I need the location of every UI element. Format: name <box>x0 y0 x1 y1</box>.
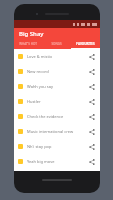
staticText: Music international crew <box>27 129 87 134</box>
button[interactable]: Share <box>87 52 96 61</box>
button[interactable]: Yeah big move <box>14 154 100 169</box>
staticText: FAVOURITES <box>76 42 95 46</box>
button[interactable]: Share <box>87 142 96 151</box>
staticText: Nh'i stay pop <box>27 144 87 149</box>
staticText: Yeah big move <box>27 159 87 164</box>
staticText: WHAT'S HOT <box>19 42 37 46</box>
staticText: SONGS <box>51 42 62 46</box>
button[interactable]: WHAT'S HOT <box>14 40 42 48</box>
button[interactable]: Love & mistix <box>14 49 100 64</box>
button[interactable]: Share <box>87 97 96 106</box>
staticText: Wahh you say <box>27 84 87 89</box>
staticText: New record <box>27 69 87 74</box>
button[interactable]: Share <box>87 157 96 166</box>
button[interactable]: Share <box>87 67 96 76</box>
button[interactable]: Share <box>87 112 96 121</box>
button[interactable]: Share <box>87 127 96 136</box>
button[interactable]: New record <box>14 64 100 79</box>
button[interactable]: Share <box>87 82 96 91</box>
staticText: Check the evidence <box>27 114 87 119</box>
button[interactable]: FAVOURITES <box>71 40 100 48</box>
staticText: Hustler <box>27 99 87 104</box>
button[interactable]: Wahh you say <box>14 79 100 94</box>
button[interactable]: Nh'i stay pop <box>14 139 100 154</box>
staticText: Big Shay <box>19 30 44 38</box>
button[interactable]: Check the evidence <box>14 109 100 124</box>
staticText: Love & mistix <box>27 54 87 59</box>
button[interactable]: Music international crew <box>14 124 100 139</box>
button[interactable]: Hustler <box>14 94 100 109</box>
button[interactable]: SONGS <box>42 40 71 48</box>
